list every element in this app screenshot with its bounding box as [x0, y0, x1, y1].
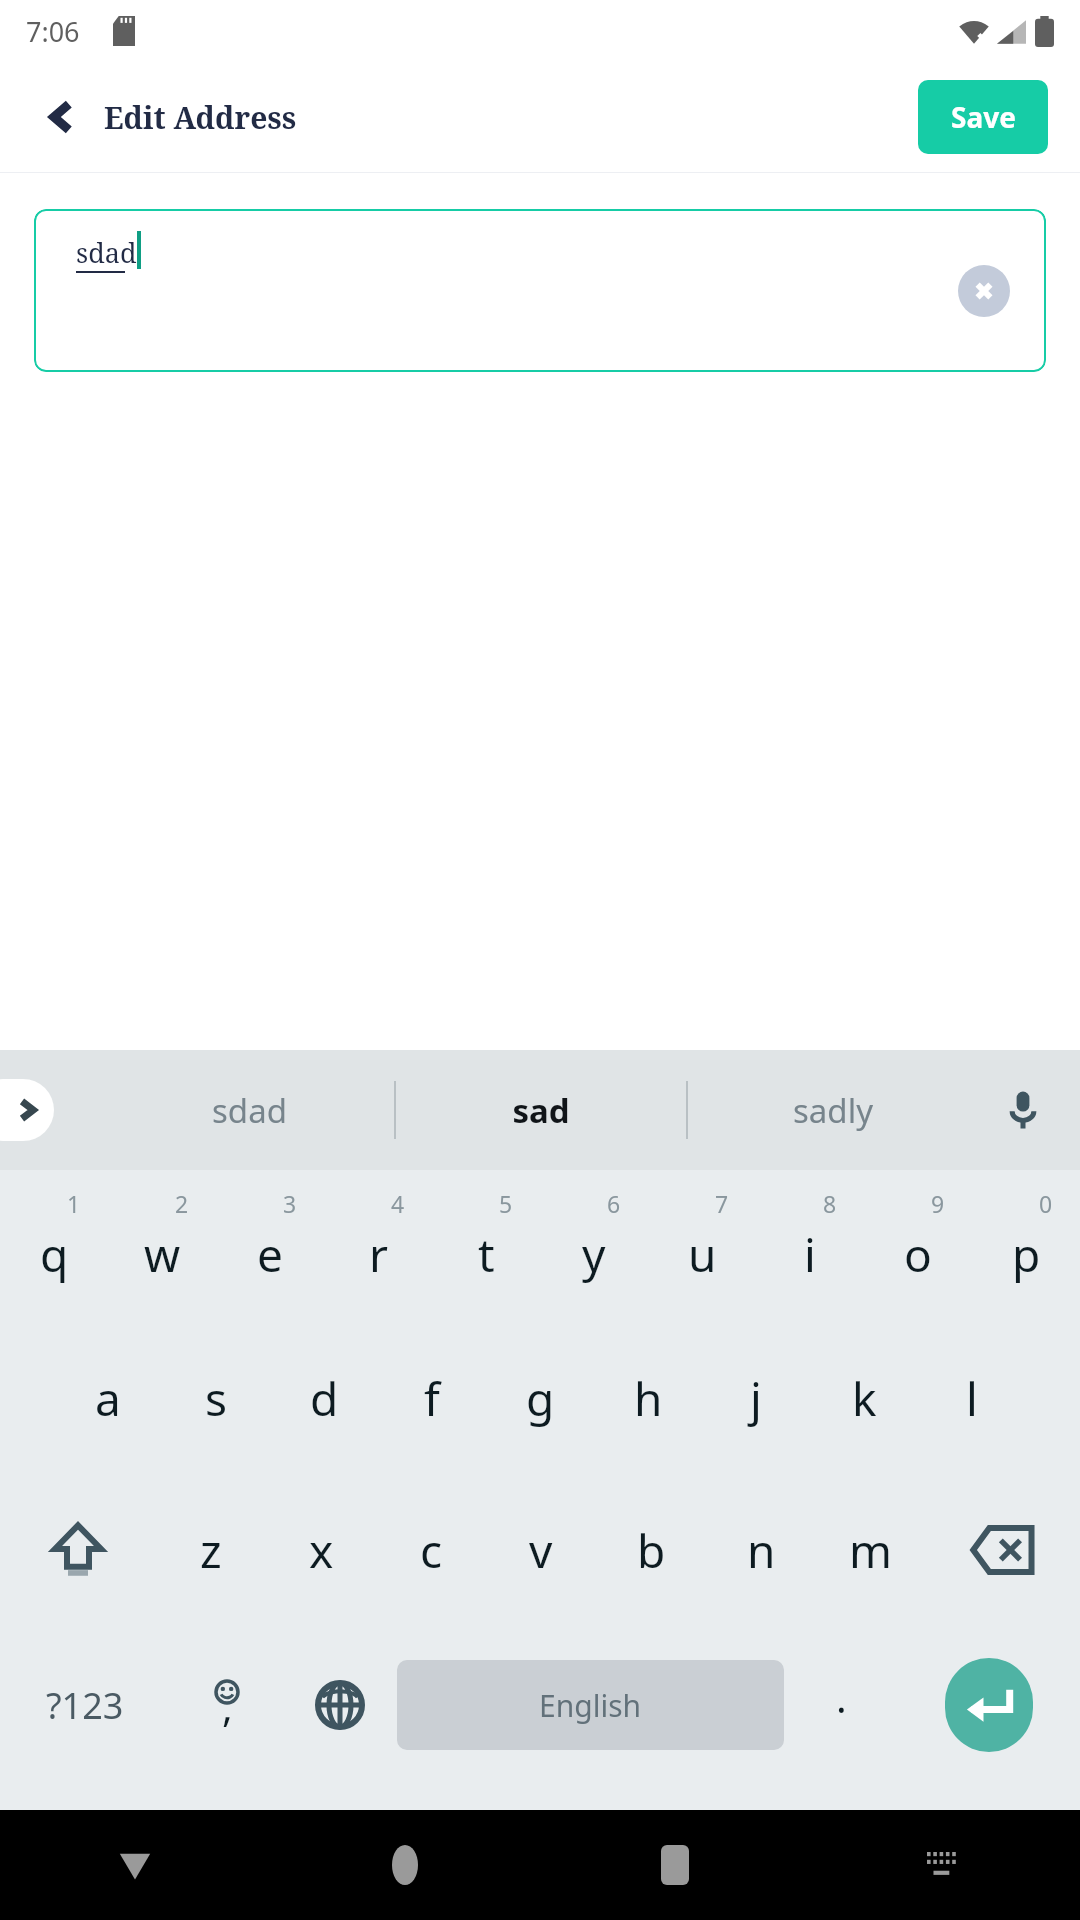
button[interactable]: 6 — [540, 1170, 648, 1322]
staticText: k — [852, 1367, 877, 1430]
staticText: 7 — [715, 1188, 729, 1219]
staticText: y — [582, 1223, 606, 1286]
button[interactable]: 4 — [324, 1170, 432, 1322]
button[interactable]: Recent apps — [540, 1810, 810, 1920]
staticText: f — [424, 1367, 440, 1430]
button[interactable]: 2 — [108, 1170, 216, 1322]
staticText: v — [529, 1519, 553, 1582]
staticText: . — [836, 1670, 847, 1724]
staticText: 6 — [607, 1188, 621, 1219]
staticText: 9 — [931, 1188, 945, 1219]
staticText: m — [849, 1519, 893, 1582]
staticText: u — [688, 1223, 717, 1286]
button[interactable]: 8 — [756, 1170, 864, 1322]
staticText: p — [1012, 1223, 1041, 1286]
staticText: 4 — [391, 1188, 405, 1219]
staticText: 8 — [823, 1188, 837, 1219]
staticText: b — [637, 1519, 666, 1582]
staticText: d — [310, 1367, 339, 1430]
staticText: g — [526, 1367, 555, 1430]
staticText: h — [634, 1367, 663, 1430]
staticText: Edit Address — [104, 97, 297, 138]
staticText: ?123 — [46, 1681, 124, 1730]
staticText: , — [222, 1679, 233, 1731]
staticText: x — [309, 1519, 334, 1582]
staticText: Save — [951, 98, 1016, 136]
button[interactable]: 1 — [0, 1170, 108, 1322]
button[interactable]: ?123 — [0, 1626, 170, 1784]
staticText: a — [95, 1367, 121, 1430]
button[interactable]: sadly — [688, 1050, 978, 1170]
button[interactable]: sdad — [34, 209, 1046, 372]
staticText: z — [200, 1519, 222, 1582]
button[interactable]: 9 — [864, 1170, 972, 1322]
button[interactable]: a — [54, 1322, 162, 1474]
button[interactable]: l — [918, 1322, 1026, 1474]
staticText: i — [804, 1223, 816, 1286]
staticText: w — [144, 1223, 181, 1286]
button[interactable]: v — [486, 1474, 596, 1626]
button[interactable]: Voice input — [992, 1079, 1054, 1141]
staticText: sad — [512, 1088, 570, 1133]
staticText: sdad — [76, 234, 137, 271]
staticText: r — [369, 1223, 388, 1286]
button[interactable]: c — [376, 1474, 486, 1626]
staticText: English — [539, 1685, 642, 1726]
button[interactable]: Shift — [0, 1474, 155, 1626]
button[interactable]: n — [706, 1474, 816, 1626]
staticText: 3 — [283, 1188, 297, 1219]
button[interactable]: Change language — [283, 1626, 397, 1784]
button[interactable]: . — [784, 1626, 898, 1784]
button[interactable]: Home — [270, 1810, 540, 1920]
staticText: t — [478, 1223, 495, 1286]
staticText: l — [966, 1367, 978, 1430]
staticText: 1 — [67, 1188, 81, 1219]
button[interactable]: 0 — [972, 1170, 1080, 1322]
button[interactable]: 3 — [216, 1170, 324, 1322]
staticText: c — [420, 1519, 443, 1582]
staticText: 7:06 — [26, 13, 80, 50]
button[interactable]: 7 — [648, 1170, 756, 1322]
button[interactable]: d — [270, 1322, 378, 1474]
button[interactable]: 5 — [432, 1170, 540, 1322]
button[interactable]: s — [162, 1322, 270, 1474]
staticText: s — [205, 1367, 228, 1430]
staticText: sdad — [212, 1088, 287, 1133]
button[interactable]: Keyboard layout — [810, 1810, 1080, 1920]
staticText: j — [750, 1367, 762, 1430]
button[interactable]: Backspace — [926, 1474, 1080, 1626]
button[interactable]: Emoji and comma — [170, 1626, 283, 1784]
button[interactable]: j — [702, 1322, 810, 1474]
button[interactable]: Back — [30, 85, 94, 149]
button[interactable]: Save — [918, 80, 1048, 154]
button[interactable]: sdad — [104, 1050, 394, 1170]
staticText: sadly — [793, 1088, 873, 1133]
button[interactable]: Enter — [945, 1658, 1033, 1752]
staticText: o — [904, 1223, 932, 1286]
button[interactable]: g — [486, 1322, 594, 1474]
button[interactable]: x — [266, 1474, 376, 1626]
staticText: 2 — [175, 1188, 189, 1219]
button[interactable]: b — [596, 1474, 706, 1626]
staticText: n — [747, 1519, 776, 1582]
button[interactable]: Expand suggestions — [0, 1079, 54, 1141]
button[interactable]: Back — [0, 1810, 270, 1920]
staticText: 5 — [499, 1188, 513, 1219]
button[interactable]: h — [594, 1322, 702, 1474]
button[interactable]: k — [810, 1322, 918, 1474]
staticText: 0 — [1039, 1188, 1053, 1219]
button[interactable]: f — [378, 1322, 486, 1474]
button[interactable]: z — [155, 1474, 266, 1626]
button[interactable]: Clear text — [958, 265, 1010, 317]
staticText: e — [257, 1223, 283, 1286]
button[interactable]: sad — [396, 1050, 686, 1170]
button[interactable]: m — [816, 1474, 926, 1626]
button[interactable]: English — [397, 1660, 784, 1750]
staticText: q — [40, 1223, 69, 1286]
